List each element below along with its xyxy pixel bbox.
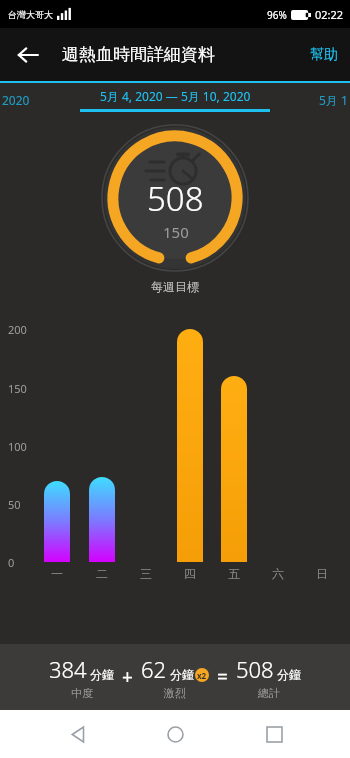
staticText: = <box>217 664 228 690</box>
button[interactable]: 5月 4, 2020 — 5月 10, 2020 <box>80 88 270 112</box>
button[interactable]: 幫助 <box>298 36 350 74</box>
button[interactable] <box>177 329 203 562</box>
button[interactable]: 508 <box>236 654 301 700</box>
staticText: 150 <box>163 222 189 242</box>
staticText: 150 <box>8 381 27 396</box>
staticText: 幫助 <box>310 46 338 64</box>
staticText: 62 <box>141 654 167 684</box>
button[interactable]: 5月 1 <box>319 92 348 108</box>
staticText: 508 <box>147 176 204 221</box>
staticText: 五 <box>228 566 240 581</box>
button[interactable] <box>89 477 115 562</box>
staticText: 02:22 <box>315 7 344 22</box>
staticText: 384 <box>49 654 87 684</box>
button[interactable]: 384 <box>49 654 114 700</box>
staticText: 5月 4, 2020 — 5月 10, 2020 <box>100 88 251 104</box>
staticText: 508 <box>236 654 274 684</box>
staticText: 四 <box>184 566 196 581</box>
staticText: 一 <box>51 566 63 581</box>
staticText: 0 <box>8 555 15 570</box>
staticText: 96% <box>267 8 287 22</box>
staticText: 100 <box>8 439 27 454</box>
staticText: 六 <box>272 566 284 581</box>
staticText: 分鐘 <box>170 667 194 682</box>
staticText: 每週目標 <box>151 279 199 294</box>
staticText: 分鐘 <box>277 667 301 682</box>
staticText: x2 <box>197 670 207 681</box>
button[interactable] <box>221 376 247 562</box>
staticText: 週熱血時間詳細資料 <box>62 44 215 65</box>
staticText: 50 <box>8 497 21 512</box>
staticText: 三 <box>140 566 152 581</box>
button[interactable]: 2020 <box>2 92 30 108</box>
button[interactable]: Recents <box>252 712 296 756</box>
button[interactable] <box>44 481 70 562</box>
staticText: 二 <box>96 566 108 581</box>
button[interactable]: Back <box>6 33 50 77</box>
staticText: 分鐘 <box>90 667 114 682</box>
button[interactable]: Back <box>55 712 99 756</box>
staticText: 總計 <box>258 686 280 700</box>
staticText: 200 <box>8 322 27 337</box>
button[interactable]: Home <box>153 712 197 756</box>
staticText: 台灣大哥大 <box>8 9 53 20</box>
staticText: + <box>122 664 133 690</box>
button[interactable]: 62 <box>141 654 209 700</box>
staticText: 激烈 <box>164 686 186 700</box>
staticText: 中度 <box>71 686 93 700</box>
staticText: 日 <box>316 566 328 581</box>
